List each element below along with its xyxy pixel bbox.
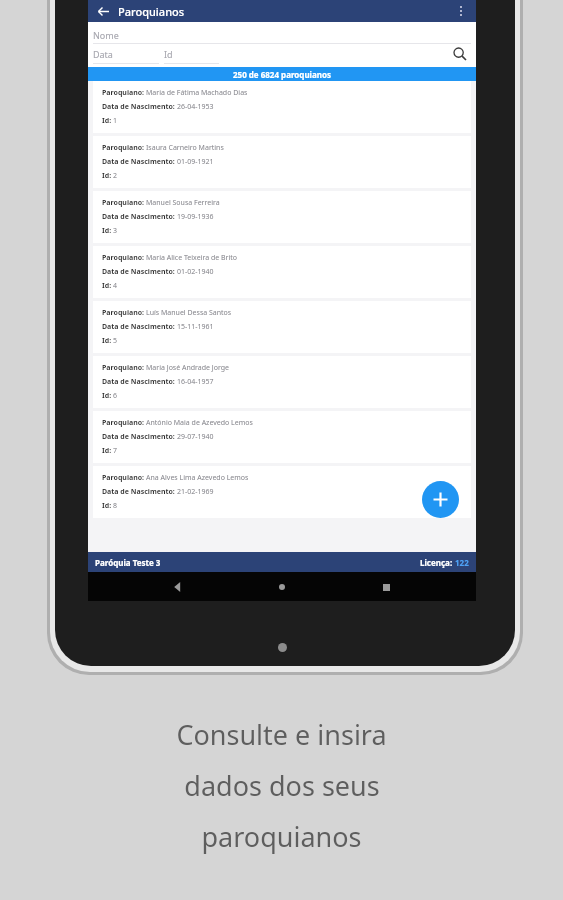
button[interactable]: Mais opções (453, 3, 469, 19)
staticText: Maria Alice Teixeira de Brito (146, 253, 237, 263)
staticText: paroquianos (201, 818, 362, 855)
staticText: Maria de Fátima Machado Dias (146, 88, 248, 98)
staticText: Consulte e insira (176, 716, 387, 753)
button[interactable]: Paroquiano: (93, 411, 471, 463)
button[interactable]: Paroquiano: (93, 191, 471, 243)
staticText: 19-09-1936 (177, 212, 214, 222)
button[interactable]: Pesquisar (449, 44, 471, 64)
staticText: 29-07-1940 (177, 432, 214, 442)
staticText: Id: (102, 281, 113, 291)
staticText: Isaura Carneiro Martins (146, 143, 224, 153)
staticText: Id: (102, 116, 113, 126)
staticText: Ana Alves Lima Azevedo Lemos (146, 473, 249, 483)
button[interactable]: Início (268, 573, 296, 601)
staticText: Data (93, 48, 113, 60)
staticText: 1 (113, 116, 118, 126)
staticText: Id (164, 48, 173, 60)
staticText: 5 (113, 336, 118, 346)
staticText: Paróquia Teste 3 (95, 557, 161, 568)
staticText: Paroquiano: (102, 198, 146, 208)
button[interactable]: Id (164, 44, 219, 64)
button[interactable]: Paroquiano: (93, 246, 471, 298)
staticText: Paroquiano: (102, 88, 146, 98)
staticText: 4 (113, 281, 118, 291)
staticText: Nome (93, 29, 119, 41)
staticText: Data de Nascimento: (102, 102, 177, 112)
staticText: 7 (113, 446, 118, 456)
staticText: 2 (113, 171, 118, 181)
staticText: Data de Nascimento: (102, 432, 177, 442)
staticText: Licença: (420, 557, 455, 568)
staticText: 3 (113, 226, 118, 236)
staticText: 21-02-1969 (177, 487, 214, 497)
staticText: Paroquiano: (102, 143, 146, 153)
staticText: 15-11-1961 (177, 322, 214, 332)
staticText: Paroquianos (118, 4, 185, 19)
staticText: António Maia de Azevedo Lemos (146, 418, 253, 428)
button[interactable]: Recentes (372, 573, 400, 601)
staticText: Data de Nascimento: (102, 377, 177, 387)
staticText: Id: (102, 171, 113, 181)
staticText: Data de Nascimento: (102, 267, 177, 277)
button[interactable]: Data (93, 44, 159, 64)
staticText: Paroquiano: (102, 363, 146, 373)
staticText: Paroquiano: (102, 473, 146, 483)
staticText: 16-04-1957 (177, 377, 214, 387)
button[interactable]: Paroquiano: (93, 466, 471, 518)
staticText: Data de Nascimento: (102, 157, 177, 167)
staticText: 250 de 6824 paroquianos (233, 69, 332, 80)
staticText: Luís Manuel Dessa Santos (146, 308, 232, 318)
button[interactable]: Adicionar paroquiano (422, 481, 459, 518)
staticText: Paroquiano: (102, 418, 146, 428)
staticText: Id: (102, 446, 113, 456)
staticText: Manuel Sousa Ferreira (146, 198, 220, 208)
staticText: 6 (113, 391, 118, 401)
staticText: 122 (455, 557, 469, 568)
button[interactable]: Nome (93, 25, 471, 44)
staticText: 8 (113, 501, 118, 511)
button[interactable]: Paroquiano: (93, 136, 471, 188)
button[interactable]: Paroquiano: (93, 301, 471, 353)
staticText: Paroquiano: (102, 253, 146, 263)
button[interactable]: Paroquiano: (93, 356, 471, 408)
button[interactable]: Paroquiano: (93, 81, 471, 133)
staticText: 01-09-1921 (177, 157, 214, 167)
staticText: dados dos seus (184, 767, 380, 804)
staticText: Data de Nascimento: (102, 212, 177, 222)
staticText: Data de Nascimento: (102, 487, 177, 497)
staticText: Data de Nascimento: (102, 322, 177, 332)
staticText: Maria José Andrade Jorge (146, 363, 230, 373)
staticText: Paroquiano: (102, 308, 146, 318)
button[interactable]: Voltar (95, 3, 111, 19)
staticText: Id: (102, 501, 113, 511)
staticText: Id: (102, 336, 113, 346)
staticText: 26-04-1953 (177, 102, 214, 112)
button[interactable]: Voltar (164, 573, 192, 601)
staticText: Id: (102, 226, 113, 236)
staticText: 01-02-1940 (177, 267, 214, 277)
staticText: Id: (102, 391, 113, 401)
